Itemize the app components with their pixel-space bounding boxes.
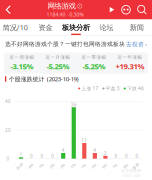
staticText: -3.15% (10, 61, 33, 72)
staticText: 1% (81, 164, 86, 169)
staticText: 20 (5, 127, 11, 133)
button[interactable]: 选不好网络游戏个股？一键打包网络游戏板块 (0, 35, 152, 52)
staticText: -5.25% (82, 61, 105, 72)
button[interactable]: 简况/10 (0, 19, 30, 35)
staticText: 上涨 17 (81, 85, 98, 92)
button[interactable]: Back (1, 0, 16, 19)
staticText: 0 (30, 153, 33, 159)
staticText: 4 (93, 147, 96, 153)
staticText: -7% (38, 164, 44, 169)
staticText: 下跌 46 (127, 85, 144, 92)
staticText: 3% (91, 164, 96, 169)
button[interactable]: Live (106, 0, 118, 19)
staticText: 平盘 3 (106, 85, 120, 92)
staticText: 0 (41, 153, 44, 159)
staticText: +19.31% (115, 61, 144, 72)
staticText: 近一季涨幅 (81, 54, 106, 60)
staticText: -1% (70, 164, 76, 169)
staticText: 0 (51, 153, 54, 159)
button[interactable]: Assistant (118, 0, 134, 19)
staticText: 新闻 (130, 23, 144, 32)
staticText: 东方财富网 (121, 168, 141, 173)
staticText: 近一周涨幅 (9, 54, 34, 60)
staticText: 网络游戏 (48, 1, 76, 11)
staticText: 去投资 › (126, 40, 147, 48)
staticText: 1184.40 -0.30% (46, 11, 83, 18)
staticText: 0 (125, 153, 128, 159)
staticText: 2 (104, 150, 107, 156)
button[interactable]: 资金 (30, 19, 61, 35)
staticText: 5% (102, 164, 107, 169)
staticText: 资金 (39, 23, 53, 32)
button[interactable]: 论坛 (91, 19, 122, 35)
button[interactable]: Search (134, 0, 150, 19)
staticText: 9% (123, 164, 128, 169)
staticText: 0 (114, 153, 117, 159)
staticText: 涨停 (132, 164, 140, 168)
staticText: 40 (5, 98, 11, 105)
staticText: 近一年涨幅 (117, 54, 142, 60)
staticText: 近一月涨幅 (45, 54, 70, 60)
staticText: 36 (71, 101, 77, 108)
staticText: 跌停 (16, 164, 24, 168)
staticText: 11 (81, 137, 87, 143)
staticText: -3% (59, 164, 65, 169)
staticText: 选不好网络游戏个股？一键打包网络游戏板块 (5, 40, 125, 48)
staticText: 4 (62, 147, 65, 153)
staticText: 个股涨跌统计 (2023-10-19) (9, 75, 79, 83)
staticText: 论坛 (99, 23, 113, 32)
staticText: 7% (112, 164, 117, 169)
button[interactable]: 板块分析 (61, 19, 91, 35)
staticText: 0 (6, 155, 9, 162)
staticText: CHOICE DATA (121, 174, 140, 178)
button[interactable]: 新闻 (122, 19, 152, 35)
staticText: -9% (27, 164, 33, 169)
staticText: 简况/10 (3, 23, 28, 32)
staticText: -5% (49, 164, 55, 169)
staticText: 0 (136, 153, 139, 159)
staticText: 板块分析 (62, 23, 90, 32)
staticText: -5.25% (46, 61, 69, 72)
staticText: 1 (19, 152, 22, 158)
